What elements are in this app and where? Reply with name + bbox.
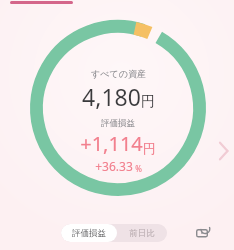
button[interactable]: Unlock — [190, 219, 214, 243]
staticText: +1,114 — [80, 130, 143, 157]
button[interactable]: 前日比 — [117, 224, 167, 242]
staticText: 評価損益 — [101, 118, 135, 129]
staticText: 円 — [143, 140, 156, 156]
staticText: すべての資産 — [91, 68, 146, 79]
staticText: 前日比 — [129, 228, 155, 239]
staticText: 円 — [141, 93, 155, 111]
staticText: 評価損益 — [72, 228, 106, 239]
staticText: 4,180 — [82, 81, 141, 112]
button[interactable]: Next page — [216, 138, 232, 164]
button[interactable]: 評価損益 — [61, 224, 117, 242]
staticText: +36.33 — [95, 158, 133, 174]
staticText: % — [133, 163, 142, 174]
